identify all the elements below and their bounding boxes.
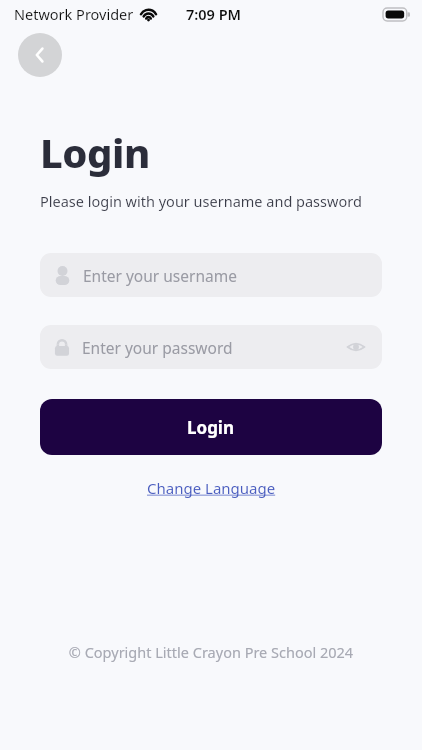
button[interactable]: Login (40, 399, 382, 455)
staticText: © Copyright Little Crayon Pre School 202… (0, 642, 422, 662)
staticText: Enter your username (83, 265, 237, 286)
staticText: Please login with your username and pass… (40, 191, 362, 211)
staticText: 7:09 PM (186, 4, 242, 24)
button[interactable]: Enter your password (40, 325, 382, 369)
staticText: Login (40, 125, 150, 179)
staticText: Enter your password (82, 337, 344, 358)
staticText: Login (187, 416, 235, 439)
button[interactable]: Show password (344, 335, 368, 359)
button[interactable]: Enter your username (40, 253, 382, 297)
staticText: Network Provider (14, 4, 134, 24)
button[interactable]: Back (18, 33, 62, 77)
staticText: Change Language (147, 478, 276, 498)
button[interactable]: Change Language (139, 475, 284, 501)
